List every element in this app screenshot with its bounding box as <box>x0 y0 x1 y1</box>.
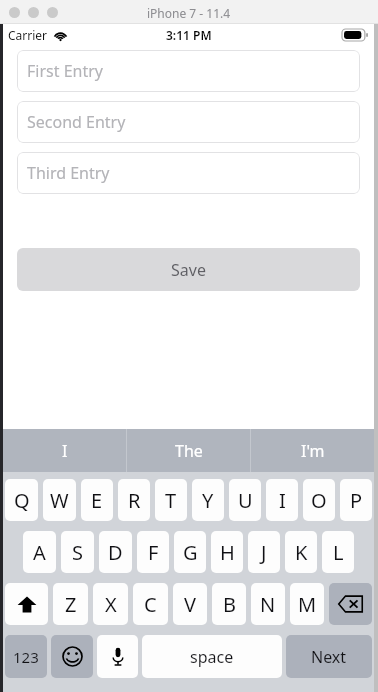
staticText: X <box>105 591 117 618</box>
button[interactable]: W <box>43 479 76 521</box>
staticText: Save <box>171 259 206 281</box>
staticText: W <box>50 487 69 514</box>
button[interactable]: Shift <box>5 583 48 625</box>
staticText: I <box>279 487 286 514</box>
staticText: space <box>190 646 234 668</box>
button[interactable]: Next <box>286 635 372 678</box>
staticText: M <box>298 591 317 618</box>
button[interactable]: I <box>266 479 298 521</box>
button[interactable]: I <box>3 429 126 472</box>
staticText: 123 <box>13 647 39 667</box>
button[interactable]: L <box>322 531 354 573</box>
staticText: U <box>238 487 253 514</box>
button[interactable]: Second Entry <box>17 101 360 143</box>
button[interactable]: Q <box>5 479 38 521</box>
button[interactable]: Y <box>192 479 224 521</box>
staticText: L <box>333 539 344 566</box>
button[interactable]: Third Entry <box>17 152 360 194</box>
staticText: A <box>33 539 46 566</box>
staticText: B <box>223 591 236 618</box>
button[interactable]: X <box>93 583 128 625</box>
staticText: I'm <box>301 440 325 462</box>
button[interactable]: N <box>251 583 285 625</box>
staticText: G <box>183 539 198 566</box>
button[interactable]: F <box>137 531 169 573</box>
button[interactable]: space <box>142 635 282 678</box>
staticText: Q <box>14 487 30 514</box>
staticText: K <box>295 539 308 566</box>
button[interactable]: O <box>303 479 335 521</box>
staticText: Next <box>311 646 347 668</box>
button[interactable]: Dictation <box>97 635 138 678</box>
button[interactable]: B <box>212 583 246 625</box>
staticText: Z <box>65 591 77 618</box>
staticText: J <box>261 539 267 566</box>
staticText: Carrier <box>8 27 48 43</box>
button[interactable]: U <box>229 479 261 521</box>
staticText: N <box>260 591 276 618</box>
staticText: Third Entry <box>27 162 110 184</box>
staticText: R <box>128 487 141 514</box>
button[interactable]: M <box>290 583 324 625</box>
button[interactable]: P <box>340 479 372 521</box>
button[interactable]: J <box>248 531 280 573</box>
button[interactable]: A <box>23 531 56 573</box>
staticText: Second Entry <box>27 111 126 133</box>
button[interactable]: S <box>61 531 94 573</box>
button[interactable]: I'm <box>251 429 374 472</box>
staticText: V <box>184 591 196 618</box>
button[interactable] <box>9 7 20 18</box>
staticText: Y <box>202 487 214 514</box>
staticText: C <box>144 591 157 618</box>
button[interactable]: G <box>174 531 206 573</box>
staticText: S <box>72 539 83 566</box>
staticText: H <box>220 539 235 566</box>
button[interactable] <box>47 7 58 18</box>
button[interactable]: 123 <box>5 635 47 678</box>
button[interactable]: C <box>133 583 168 625</box>
button[interactable]: Z <box>53 583 88 625</box>
staticText: The <box>175 440 203 462</box>
button[interactable]: T <box>155 479 187 521</box>
button[interactable]: H <box>211 531 243 573</box>
button[interactable]: D <box>99 531 132 573</box>
button[interactable]: The <box>127 429 250 472</box>
button[interactable]: Emoji <box>51 635 93 678</box>
staticText: E <box>91 487 103 514</box>
button[interactable] <box>28 7 39 18</box>
button[interactable]: K <box>285 531 317 573</box>
staticText: T <box>165 487 177 514</box>
staticText: P <box>350 487 363 514</box>
staticText: F <box>148 539 159 566</box>
staticText: I <box>62 440 68 462</box>
staticText: D <box>108 539 123 566</box>
staticText: iPhone 7 - 11.4 <box>147 5 231 21</box>
staticText: O <box>311 487 327 514</box>
button[interactable]: R <box>118 479 150 521</box>
button[interactable]: First Entry <box>17 50 360 92</box>
staticText: First Entry <box>27 60 103 82</box>
staticText: 3:11 PM <box>166 27 212 43</box>
button[interactable]: Backspace <box>329 583 372 625</box>
button[interactable]: V <box>173 583 207 625</box>
button[interactable]: Save <box>17 248 360 291</box>
button[interactable]: E <box>81 479 113 521</box>
